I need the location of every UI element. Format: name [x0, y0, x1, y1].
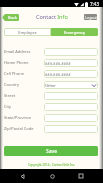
button[interactable]: Emergency	[51, 28, 98, 36]
button[interactable]: Employee	[4, 28, 51, 36]
staticText: Logout	[85, 15, 97, 20]
button[interactable]: Back	[2, 14, 19, 21]
staticText: Info	[57, 13, 68, 20]
button[interactable]	[44, 48, 98, 56]
staticText: Cell Phone	[4, 71, 44, 76]
button[interactable]	[44, 103, 98, 111]
button[interactable]	[44, 114, 98, 122]
staticText: City	[4, 104, 44, 109]
staticText: State/Province	[4, 115, 44, 120]
button[interactable]: Save	[4, 146, 98, 156]
button[interactable]: Recent apps	[74, 169, 88, 183]
staticText: Home Phone	[4, 60, 44, 65]
staticText: Email Address	[4, 49, 44, 54]
staticText: Country	[4, 82, 44, 87]
staticText: Zip/Postal Code	[4, 126, 44, 131]
button[interactable]: Home	[45, 169, 59, 183]
staticText: Back	[8, 15, 17, 20]
button[interactable]	[44, 92, 98, 100]
button[interactable]	[44, 125, 98, 133]
button[interactable]: Back	[15, 169, 29, 183]
staticText: Other	[45, 83, 56, 88]
staticText: Emergency	[64, 30, 85, 35]
button[interactable]: ###-###-####	[44, 70, 98, 78]
staticText: Employee	[18, 30, 37, 35]
button[interactable]: Other	[44, 81, 98, 89]
staticText: Contact	[35, 13, 57, 20]
staticText: ###-###-####	[45, 61, 71, 66]
staticText: Copyright 2014 - Contact Info Inc.	[0, 163, 103, 167]
button[interactable]: Logout	[84, 14, 97, 20]
staticText: 7:43	[90, 1, 99, 7]
staticText: ###-###-####	[45, 72, 71, 77]
staticText: Street	[4, 93, 44, 98]
staticText: Save	[46, 148, 57, 155]
button[interactable]: ###-###-####	[44, 59, 98, 67]
